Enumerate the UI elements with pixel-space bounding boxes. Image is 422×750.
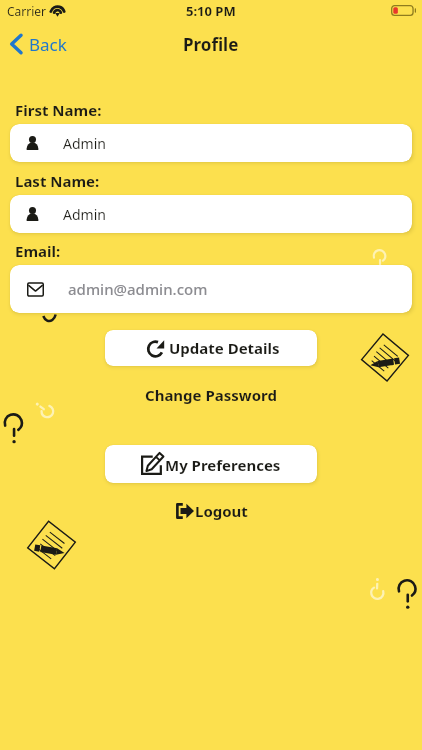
staticText: Email: xyxy=(15,241,61,261)
button[interactable]: My Preferences xyxy=(105,445,317,483)
staticText: First Name: xyxy=(15,100,102,120)
staticText: Last Name: xyxy=(15,171,100,191)
staticText: Update Details xyxy=(169,338,280,358)
button[interactable] xyxy=(10,195,412,233)
button[interactable]: Back xyxy=(4,26,77,62)
button[interactable]: Change Password xyxy=(137,382,285,408)
staticText: Admin xyxy=(63,134,106,153)
button[interactable]: Update Details xyxy=(105,330,317,366)
button[interactable] xyxy=(10,124,412,162)
staticText: admin@admin.com xyxy=(68,279,208,299)
staticText: Admin xyxy=(63,205,106,224)
staticText: 5:10 PM xyxy=(186,2,236,20)
button[interactable]: Logout xyxy=(167,498,256,524)
staticText: Carrier xyxy=(7,3,47,19)
staticText: Change Password xyxy=(145,385,277,405)
staticText: My Preferences xyxy=(165,455,281,475)
staticText: Profile xyxy=(183,33,239,56)
staticText: Back xyxy=(29,33,67,56)
button[interactable] xyxy=(10,265,412,313)
staticText: Logout xyxy=(195,501,248,521)
